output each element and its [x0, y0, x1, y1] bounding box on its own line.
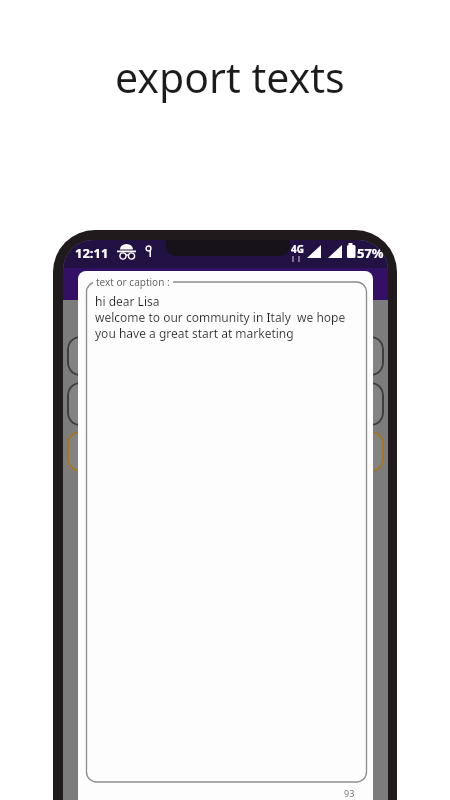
staticText: 93 — [344, 787, 355, 799]
staticText: export texts — [115, 49, 345, 105]
staticText: text or caption : — [96, 275, 170, 289]
button[interactable] — [67, 431, 384, 472]
staticText: 12:11 — [75, 244, 109, 262]
button[interactable] — [67, 382, 384, 426]
staticText: 4G — [291, 242, 304, 256]
staticText: hi dear Lisa welcome to our community in… — [95, 293, 346, 341]
staticText: 57% — [357, 244, 384, 262]
button[interactable] — [67, 336, 384, 376]
button[interactable]: text or caption : — [78, 271, 373, 800]
